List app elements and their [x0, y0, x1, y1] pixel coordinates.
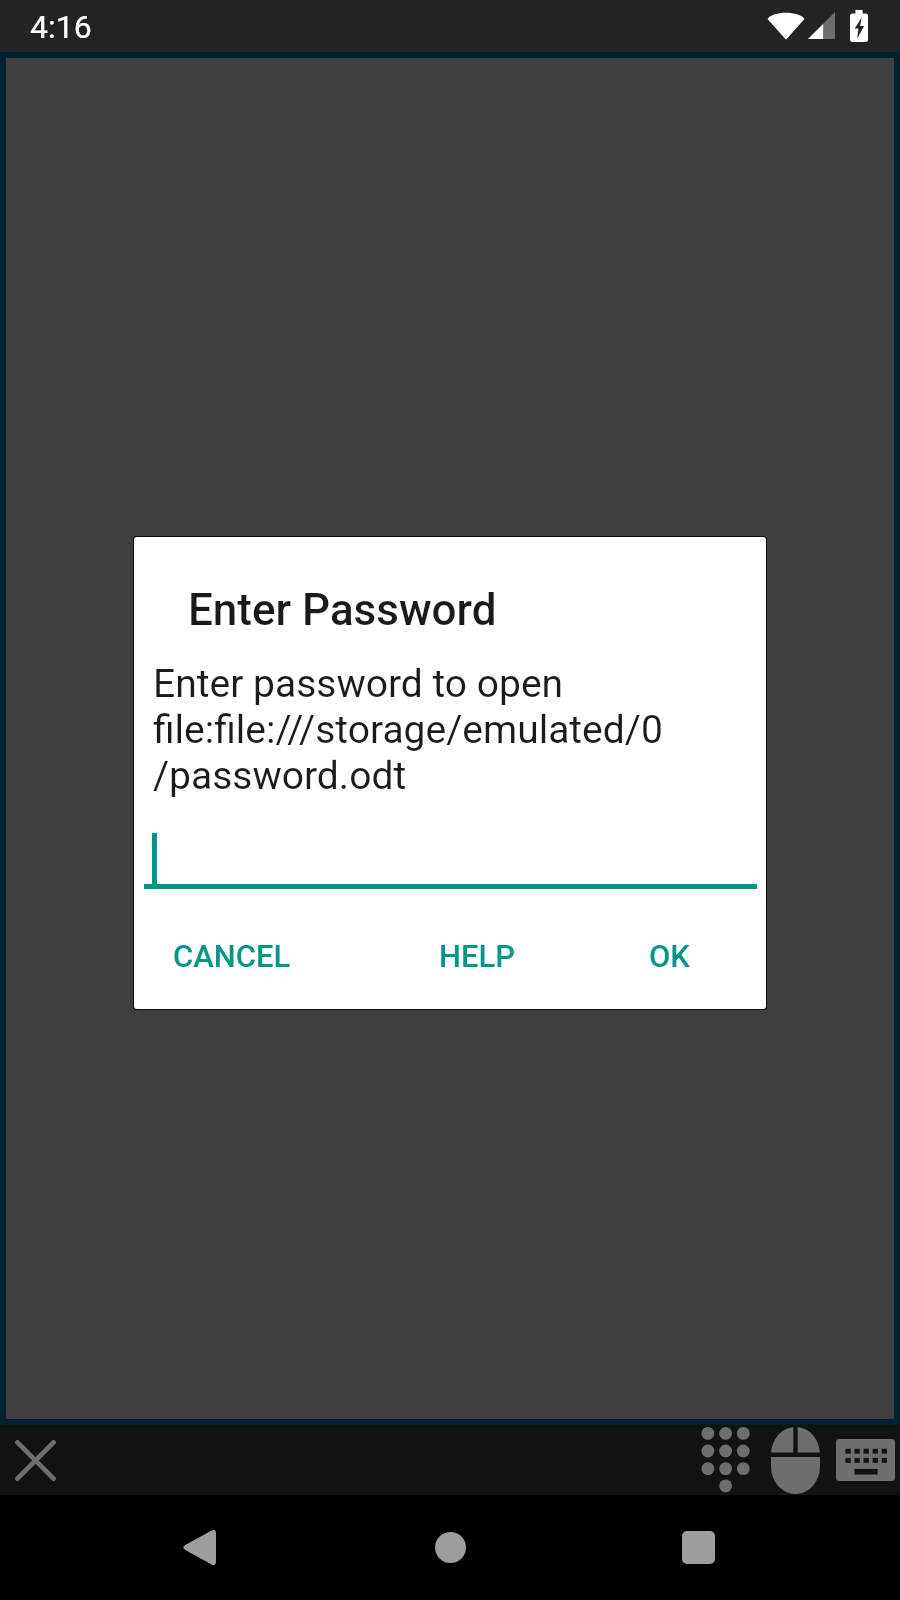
button[interactable]: OK — [631, 919, 708, 993]
button[interactable]: CANCEL — [155, 919, 309, 993]
button[interactable]: Mouse — [760, 1425, 830, 1495]
staticText: CANCEL — [173, 938, 291, 974]
button[interactable]: Dialpad — [690, 1425, 760, 1495]
staticText: HELP — [439, 938, 516, 974]
button[interactable]: Back — [144, 1495, 254, 1599]
staticText: OK — [649, 938, 690, 974]
button[interactable]: Close — [0, 1430, 70, 1490]
staticText: Enter password to open file:file:///stor… — [153, 661, 663, 799]
staticText: Enter Password — [188, 584, 497, 636]
button[interactable]: Keyboard — [835, 1439, 895, 1481]
button[interactable]: Password field — [144, 831, 757, 889]
staticText: 4:16 — [30, 8, 92, 46]
button[interactable]: Home — [395, 1495, 505, 1599]
button[interactable]: HELP — [421, 919, 534, 993]
button[interactable]: Recents — [643, 1495, 753, 1599]
